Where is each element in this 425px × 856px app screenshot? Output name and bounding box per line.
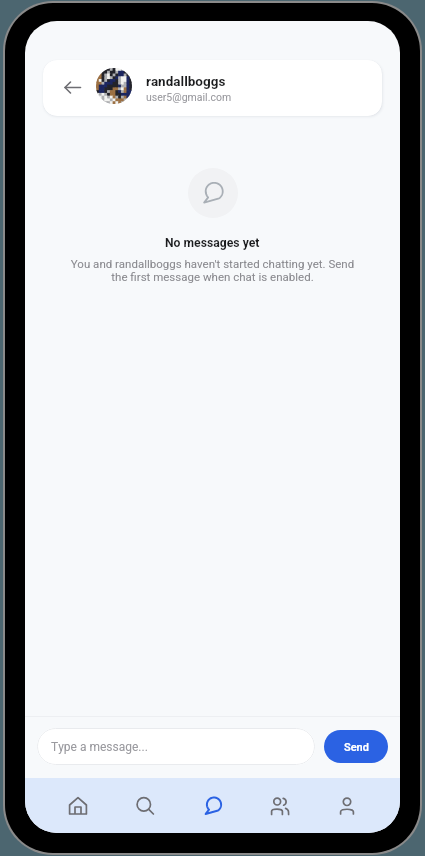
staticText: Type a message... <box>51 738 148 756</box>
staticText: Send <box>344 739 369 755</box>
staticText: randallboggs <box>146 72 226 92</box>
staticText: You and randallboggs haven't started cha… <box>65 256 360 286</box>
staticText: No messages yet <box>165 234 260 252</box>
staticText: user5@gmail.com <box>146 90 232 105</box>
button[interactable]: Type a message... <box>37 728 315 765</box>
button[interactable]: Groups <box>256 782 304 830</box>
button[interactable]: Home <box>54 782 102 830</box>
button[interactable]: Profile <box>323 782 371 830</box>
button[interactable]: Send <box>324 730 388 763</box>
button[interactable]: Back <box>60 75 85 100</box>
button[interactable]: Messages <box>189 782 237 830</box>
button[interactable]: Search <box>121 782 169 830</box>
